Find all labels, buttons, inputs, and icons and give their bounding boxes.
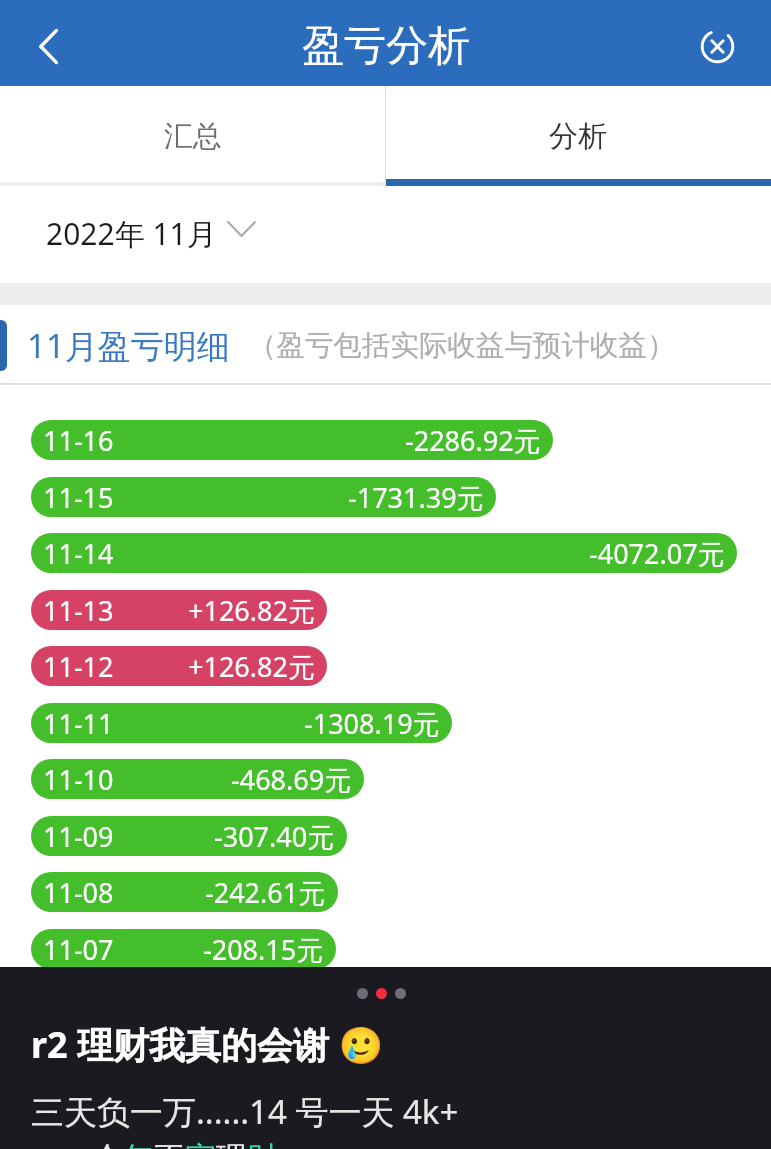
staticText: 财 <box>247 1139 278 1149</box>
button[interactable]: 11-15 <box>31 477 496 517</box>
staticText: 汇总 <box>164 118 222 155</box>
staticText: 11-15 <box>43 479 114 516</box>
button[interactable]: 11-09 <box>31 816 347 856</box>
staticText: 不 <box>154 1139 185 1149</box>
staticText: 今 <box>92 1139 123 1149</box>
button[interactable]: r2 理财我真的会谢 🥲 <box>0 967 771 1149</box>
staticText: 11-14 <box>43 535 114 572</box>
staticText: 三天负一万......14 号一天 4k+ <box>31 1089 459 1134</box>
staticText: -4072.07元 <box>589 535 725 572</box>
staticText: 11月盈亏明细 <box>27 323 230 368</box>
staticText: 11-10 <box>43 761 114 798</box>
button[interactable]: 11-11 <box>31 703 452 743</box>
button[interactable]: Back <box>0 0 96 86</box>
staticText: 年 <box>123 1139 154 1149</box>
staticText: 理 <box>216 1139 247 1149</box>
staticText: 宜 <box>185 1139 216 1149</box>
staticText: -2286.92元 <box>405 422 541 459</box>
staticText: +126.82元 <box>188 648 315 685</box>
staticText: -468.69元 <box>231 761 352 798</box>
staticText: 盈亏分析 <box>302 20 470 73</box>
button[interactable]: 11-08 <box>31 872 338 912</box>
button[interactable]: Close <box>663 0 771 86</box>
staticText: -208.15元 <box>203 931 324 968</box>
staticText: -242.61元 <box>205 874 326 911</box>
staticText: 11-16 <box>43 422 114 459</box>
staticText: 11-07 <box>43 931 114 968</box>
staticText: 11-12 <box>43 648 114 685</box>
button[interactable]: 分析 <box>385 86 771 187</box>
button[interactable]: 2022年 11月 <box>46 215 256 256</box>
staticText: 11-09 <box>43 818 114 855</box>
button[interactable]: 11-10 <box>31 759 364 799</box>
staticText: 11-13 <box>43 592 114 629</box>
staticText: -307.40元 <box>214 818 335 855</box>
button[interactable]: 11-07 <box>31 929 336 969</box>
staticText: 2022年 11月 <box>46 213 217 254</box>
button[interactable]: 11-13 <box>31 590 327 630</box>
button[interactable]: 11-14 <box>31 533 737 573</box>
button[interactable]: 11-12 <box>31 646 327 686</box>
staticText: 分析 <box>549 118 607 155</box>
staticText: 11-11 <box>43 705 114 742</box>
staticText: r2 理财我真的会谢 🥲 <box>31 1020 384 1069</box>
staticText: -1731.39元 <box>348 479 484 516</box>
staticText: （盈亏包括实际收益与预计收益） <box>248 328 676 364</box>
button[interactable]: 11-16 <box>31 420 553 460</box>
staticText: +126.82元 <box>188 592 315 629</box>
staticText: -1308.19元 <box>304 705 440 742</box>
staticText: 11-08 <box>43 874 114 911</box>
button[interactable]: 汇总 <box>0 86 385 187</box>
